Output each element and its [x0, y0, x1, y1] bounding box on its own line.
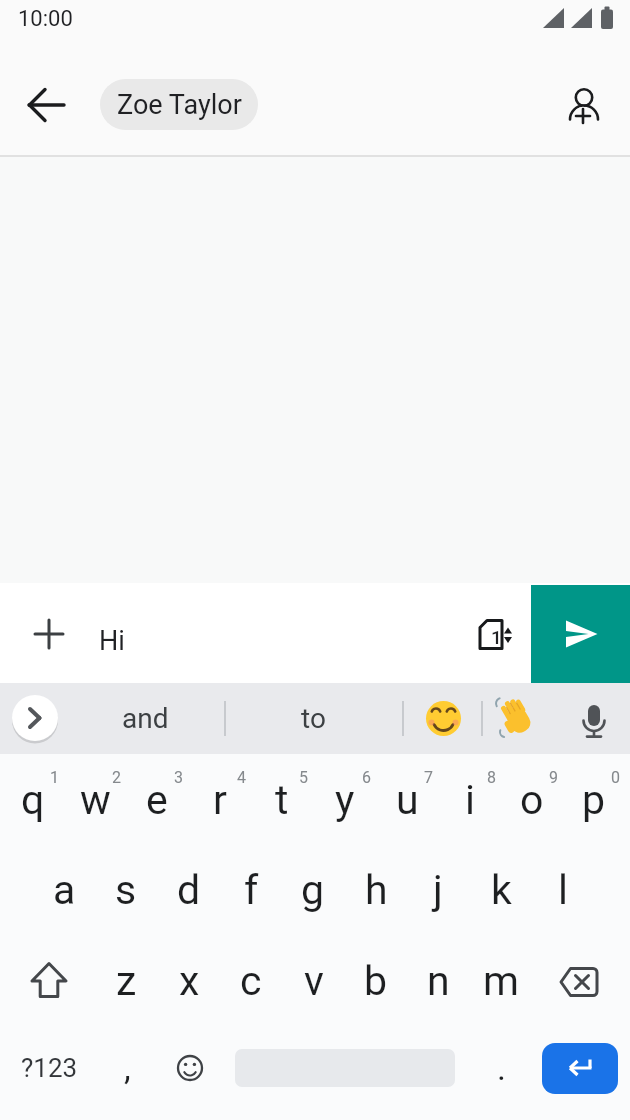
staticText: t	[275, 776, 289, 824]
staticText: x	[179, 957, 200, 1005]
staticText: b	[364, 957, 388, 1005]
staticText: o	[520, 776, 544, 824]
button[interactable]: e	[126, 769, 188, 831]
staticText: k	[491, 866, 512, 914]
button[interactable]: p	[563, 769, 625, 831]
staticText: w	[80, 776, 111, 824]
staticText: and	[122, 702, 169, 735]
button[interactable]: u	[376, 769, 438, 831]
button[interactable]: m	[470, 950, 532, 1012]
button[interactable]	[18, 950, 80, 1012]
button[interactable]: w	[64, 769, 126, 831]
staticText: l	[558, 866, 568, 914]
button[interactable]: ,	[96, 1037, 158, 1099]
staticText: ?123	[21, 1053, 78, 1083]
button[interactable]: q	[2, 769, 64, 831]
button[interactable]: t	[251, 769, 313, 831]
button[interactable]: l	[532, 859, 594, 921]
button[interactable]: y	[314, 769, 376, 831]
staticText: a	[53, 866, 76, 914]
button[interactable]	[548, 950, 612, 1012]
staticText: 3	[174, 768, 183, 787]
button[interactable]: 1	[470, 612, 520, 657]
staticText: 0	[611, 768, 620, 787]
staticText: s	[115, 866, 137, 914]
staticText: 1	[50, 768, 59, 787]
button[interactable]: n	[407, 950, 469, 1012]
button[interactable]: r	[189, 769, 251, 831]
button[interactable]: .	[470, 1037, 532, 1099]
button[interactable]: ?123	[16, 1037, 82, 1099]
staticText: to	[301, 702, 326, 735]
button[interactable]: f	[220, 859, 282, 921]
button[interactable]: z	[95, 950, 157, 1012]
staticText: .	[497, 1048, 506, 1088]
staticText: 5	[299, 768, 308, 787]
button[interactable]: o	[501, 769, 563, 831]
button[interactable]: s	[95, 859, 157, 921]
staticText: n	[427, 957, 450, 1005]
button[interactable]: i	[439, 769, 501, 831]
button[interactable]	[25, 610, 73, 658]
button[interactable]: j	[407, 859, 469, 921]
button[interactable]	[20, 79, 72, 131]
button[interactable]: g	[282, 859, 344, 921]
staticText: i	[465, 776, 475, 824]
staticText: j	[433, 866, 443, 914]
staticText: v	[304, 957, 324, 1005]
button[interactable]	[12, 695, 58, 741]
button[interactable]: a	[33, 859, 95, 921]
button[interactable]: Zoe Taylor	[100, 79, 258, 130]
staticText: 6	[362, 768, 371, 787]
button[interactable]: b	[345, 950, 407, 1012]
staticText: 4	[237, 768, 246, 787]
staticText: f	[244, 866, 259, 914]
staticText: ,	[124, 1048, 131, 1088]
staticText: e	[146, 776, 168, 824]
button[interactable]	[495, 695, 540, 740]
button[interactable]: v	[283, 950, 345, 1012]
button[interactable]	[560, 80, 610, 130]
staticText: y	[335, 776, 355, 824]
button[interactable]: and	[95, 690, 195, 746]
button[interactable]	[159, 1037, 221, 1099]
staticText: 1	[491, 626, 502, 648]
button[interactable]: d	[158, 859, 220, 921]
button[interactable]	[421, 696, 466, 741]
staticText: 10:00	[18, 6, 73, 32]
button[interactable]: Hi	[99, 622, 219, 659]
button[interactable]	[542, 1043, 618, 1094]
staticText: 2	[112, 768, 121, 787]
staticText: p	[582, 776, 606, 824]
staticText: c	[240, 957, 262, 1005]
button[interactable]: h	[345, 859, 407, 921]
button[interactable]	[531, 585, 630, 683]
staticText: u	[396, 776, 419, 824]
button[interactable]	[574, 695, 614, 741]
staticText: d	[177, 866, 201, 914]
button[interactable]: c	[220, 950, 282, 1012]
staticText: 8	[487, 768, 496, 787]
staticText: g	[301, 866, 325, 914]
staticText: r	[213, 776, 227, 824]
staticText: m	[483, 957, 519, 1005]
button[interactable]: k	[470, 859, 532, 921]
staticText: 9	[549, 768, 558, 787]
staticText: 7	[424, 768, 433, 787]
staticText: Zoe Taylor	[117, 89, 242, 121]
staticText: z	[116, 957, 137, 1005]
staticText: h	[365, 866, 388, 914]
staticText: Hi	[99, 625, 125, 657]
staticText: q	[21, 776, 45, 824]
button[interactable]: to	[263, 690, 363, 746]
button[interactable]: x	[158, 950, 220, 1012]
